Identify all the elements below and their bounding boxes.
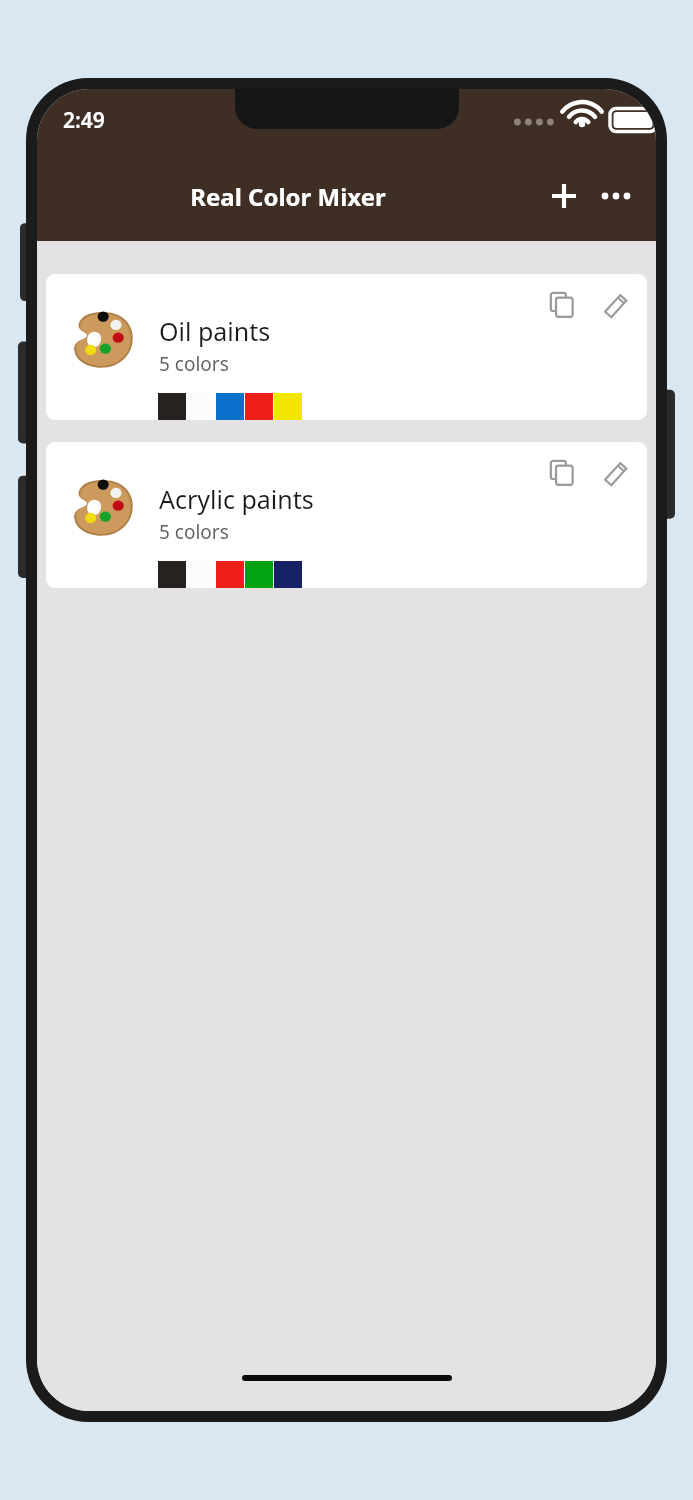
staticText: 5 colors bbox=[159, 519, 229, 545]
button[interactable]: Duplicate palette bbox=[46, 442, 647, 588]
staticText: Real Color Mixer bbox=[190, 180, 386, 213]
button[interactable]: Edit palette bbox=[589, 278, 643, 332]
button[interactable]: Duplicate palette bbox=[535, 278, 589, 332]
button[interactable]: More options bbox=[590, 170, 642, 222]
staticText: 2:49 bbox=[63, 106, 105, 135]
staticText: 5 colors bbox=[159, 351, 229, 377]
button[interactable]: Duplicate palette bbox=[535, 446, 589, 500]
button[interactable]: Duplicate palette bbox=[46, 274, 647, 420]
staticText: Acrylic paints bbox=[159, 482, 314, 516]
button[interactable]: Edit palette bbox=[589, 446, 643, 500]
staticText: Oil paints bbox=[159, 314, 271, 348]
button[interactable]: Add palette bbox=[538, 170, 590, 222]
